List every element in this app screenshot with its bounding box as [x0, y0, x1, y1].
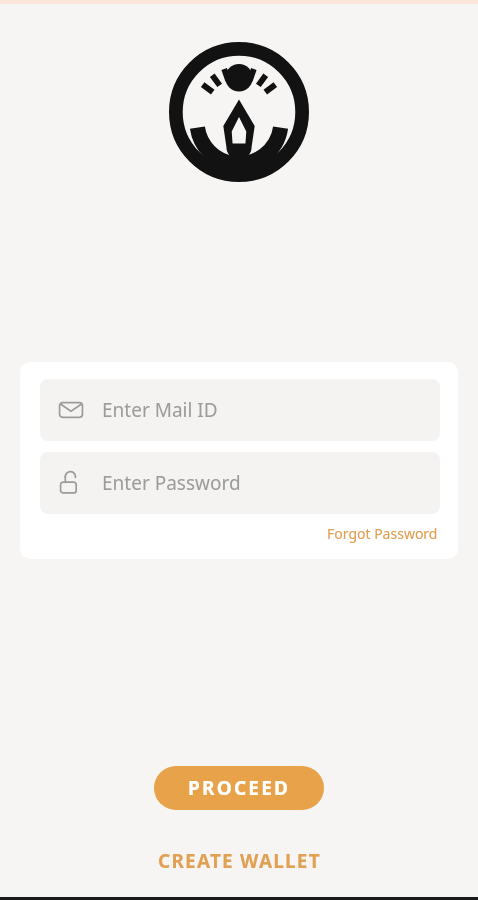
button[interactable]: Forgot Password [325, 522, 440, 545]
other: Mail [58, 397, 84, 423]
staticText: Enter Password [102, 470, 241, 496]
staticText: CREATE WALLET [158, 848, 321, 874]
button[interactable]: Mail [40, 379, 440, 441]
staticText: PROCEED [188, 775, 291, 801]
other: Password [58, 470, 84, 496]
staticText: Enter Mail ID [102, 397, 218, 423]
button[interactable]: CREATE WALLET [148, 842, 331, 880]
button[interactable]: Password [40, 452, 440, 514]
staticText: Forgot Password [327, 524, 438, 543]
button[interactable]: PROCEED [154, 766, 324, 810]
